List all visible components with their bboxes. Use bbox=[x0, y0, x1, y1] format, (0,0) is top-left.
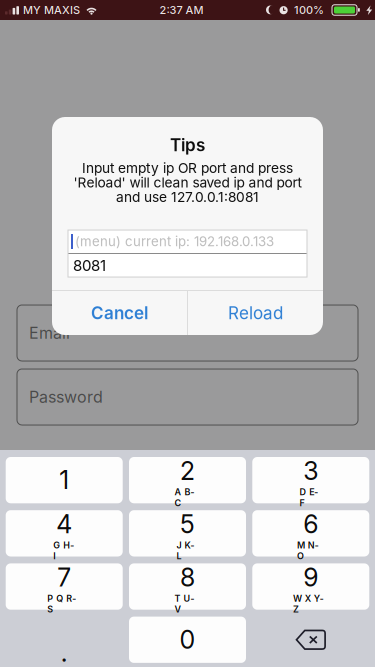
staticText: 3 bbox=[303, 456, 318, 486]
button[interactable]: Cancel bbox=[52, 291, 187, 335]
staticText: 'Reload' will clean saved ip and port bbox=[73, 174, 301, 191]
staticText: Password bbox=[29, 387, 103, 407]
button[interactable]: 1 bbox=[6, 457, 123, 503]
staticText: . bbox=[61, 638, 68, 667]
staticText: 8 bbox=[180, 562, 195, 592]
staticText: 8081 bbox=[73, 256, 106, 274]
button[interactable]: 0 bbox=[129, 617, 246, 663]
staticText: Email bbox=[29, 323, 70, 343]
staticText: Reload bbox=[228, 303, 283, 323]
button[interactable]: . bbox=[6, 617, 123, 663]
staticText: 6 bbox=[303, 509, 318, 539]
button[interactable]: Password bbox=[17, 369, 358, 425]
staticText: MNO bbox=[297, 540, 325, 551]
staticText: PQRS bbox=[47, 593, 81, 604]
staticText: 1 bbox=[59, 465, 69, 495]
staticText: 5 bbox=[180, 509, 195, 539]
button[interactable]: Reload bbox=[188, 291, 323, 335]
button[interactable]: Delete bbox=[252, 617, 369, 663]
button[interactable]: 5 bbox=[129, 510, 246, 556]
staticText: MY MAXIS bbox=[23, 3, 80, 17]
button[interactable]: 3 bbox=[252, 457, 369, 503]
staticText: Cancel bbox=[91, 303, 148, 323]
staticText: JKL bbox=[177, 540, 198, 551]
button[interactable]: 6 bbox=[252, 510, 369, 556]
button[interactable]: Email bbox=[17, 305, 358, 361]
staticText: Tips bbox=[170, 135, 205, 155]
button[interactable]: 8 bbox=[129, 563, 246, 610]
staticText: 7 bbox=[57, 562, 71, 592]
staticText: ABC bbox=[175, 487, 200, 497]
button[interactable]: 7 bbox=[6, 563, 123, 610]
staticText: 100% bbox=[294, 3, 324, 17]
staticText: 2 bbox=[180, 456, 195, 486]
staticText: (menu) current ip: 192.168.0.133 bbox=[75, 233, 274, 249]
button[interactable]: 9 bbox=[252, 563, 369, 610]
staticText: Input empty ip OR port and press bbox=[82, 160, 293, 176]
staticText: 9 bbox=[303, 562, 318, 592]
staticText: 2:37 AM bbox=[159, 3, 203, 17]
button[interactable]: 2 bbox=[129, 457, 246, 503]
staticText: TUV bbox=[175, 593, 200, 604]
staticText: and use 127.0.0.1:8081 bbox=[116, 189, 259, 205]
staticText: 4 bbox=[56, 509, 72, 539]
button[interactable]: 4 bbox=[6, 510, 123, 556]
staticText: DEF bbox=[299, 487, 322, 497]
staticText: WXYZ bbox=[293, 593, 329, 604]
staticText: 0 bbox=[179, 624, 195, 655]
staticText: GHI bbox=[53, 540, 75, 551]
